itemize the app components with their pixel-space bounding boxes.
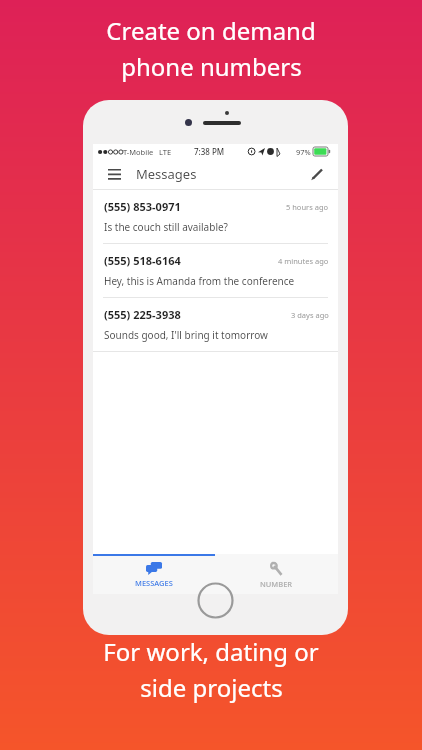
- staticText: side projects: [140, 671, 283, 704]
- staticText: (555) 853-0971: [104, 199, 181, 214]
- staticText: Sounds good, I'll bring it tomorrow: [104, 328, 268, 342]
- staticText: NUMBER: [260, 579, 293, 589]
- staticText: 3 days ago: [291, 310, 329, 320]
- staticText: 7:38 PM: [194, 146, 225, 157]
- staticText: For work, dating or: [103, 635, 319, 668]
- staticText: Hey, this is Amanda from the conference: [104, 274, 295, 288]
- staticText: 4 minutes ago: [278, 256, 329, 266]
- staticText: Messages: [136, 165, 197, 183]
- staticText: 5 hours ago: [286, 202, 329, 212]
- button[interactable]: MESSAGES: [93, 556, 215, 594]
- button[interactable]: (555) 518-6164: [93, 244, 338, 297]
- button[interactable]: (555) 853-0971: [93, 190, 338, 243]
- staticText: (555) 225-3938: [104, 307, 181, 322]
- button[interactable]: Open navigation menu: [103, 163, 125, 185]
- button[interactable]: NUMBER: [215, 556, 338, 594]
- staticText: 97%: [296, 147, 311, 157]
- staticText: LTE: [159, 147, 172, 157]
- staticText: Is the couch still available?: [104, 220, 228, 234]
- staticText: Create on demand: [106, 14, 316, 47]
- button[interactable]: Compose new message: [306, 163, 328, 185]
- button[interactable]: (555) 225-3938: [93, 298, 338, 351]
- staticText: phone numbers: [121, 50, 302, 83]
- staticText: (555) 518-6164: [104, 253, 181, 268]
- staticText: MESSAGES: [135, 578, 173, 588]
- staticText: T-Mobile: [123, 147, 154, 157]
